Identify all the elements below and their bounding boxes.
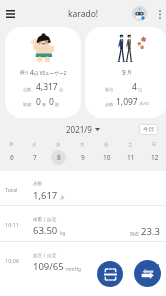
staticText: 12 xyxy=(151,153,159,162)
staticText: 8 xyxy=(57,153,61,162)
staticText: 7 xyxy=(33,153,37,162)
button[interactable]: 10:06 xyxy=(0,242,166,277)
staticText: 0 xyxy=(36,96,41,108)
button[interactable]: 月 xyxy=(0,140,23,171)
staticText: 残り xyxy=(20,70,30,76)
staticText: 歩数 xyxy=(105,102,114,107)
staticText: 0 xyxy=(49,96,54,108)
button[interactable]: Total xyxy=(0,171,166,205)
staticText: 10:06 xyxy=(5,257,33,264)
staticText: karado! xyxy=(68,8,99,20)
staticText: 63.50 xyxy=(33,224,58,237)
staticText: 1,097 xyxy=(116,96,138,108)
staticText: 火 xyxy=(32,142,37,148)
staticText: BMI xyxy=(130,231,139,237)
staticText: mmHg xyxy=(66,266,81,272)
staticText: 血圧 | 自宅 xyxy=(33,252,57,258)
button[interactable]: 木 xyxy=(70,140,94,171)
button[interactable]: Profile xyxy=(132,6,147,21)
staticText: 10:11 xyxy=(5,221,33,228)
staticText: kg xyxy=(60,230,66,236)
staticText: 敗 xyxy=(55,102,60,107)
staticText: 点数 xyxy=(23,87,32,92)
staticText: 9 xyxy=(122,68,126,77)
button[interactable]: More options xyxy=(153,4,166,24)
staticText: 歩/日 xyxy=(139,101,149,107)
staticText: 順位 xyxy=(105,87,114,92)
staticText: 4 xyxy=(30,68,34,77)
button[interactable]: 9 xyxy=(85,27,166,118)
staticText: 4 xyxy=(132,81,137,93)
staticText: 木 xyxy=(80,142,85,148)
staticText: 点 xyxy=(59,87,64,92)
button[interactable]: Menu xyxy=(2,6,18,22)
staticText: 今日 xyxy=(143,126,154,133)
staticText: 日 xyxy=(152,142,157,148)
staticText: 109/65 xyxy=(33,260,64,273)
button[interactable]: 2021/9 xyxy=(63,121,103,138)
button[interactable]: 火 xyxy=(23,140,46,171)
staticText: 歩 xyxy=(60,195,65,201)
button[interactable]: 金 xyxy=(94,140,118,171)
staticText: 体重 | 自宅 xyxy=(33,216,57,222)
button[interactable]: 今日 xyxy=(139,124,158,135)
button[interactable]: Sync xyxy=(134,260,161,287)
staticText: 勝 xyxy=(42,102,47,107)
button[interactable]: 水 xyxy=(46,140,70,171)
button[interactable]: 土 xyxy=(118,140,142,171)
staticText: 戦績 xyxy=(23,102,32,107)
staticText: 9 xyxy=(81,153,85,162)
staticText: 23.3 xyxy=(141,225,160,238)
staticText: 歩数 xyxy=(33,181,43,187)
staticText: 月 xyxy=(9,142,14,148)
staticText: 位 xyxy=(138,87,143,92)
staticText: 11 xyxy=(127,153,135,162)
staticText: 74 xyxy=(149,261,160,274)
staticText: 日 VSユーザー2 xyxy=(34,70,67,76)
staticText: 4,317 xyxy=(36,81,58,93)
button[interactable]: Measure xyxy=(97,261,123,287)
staticText: 土 xyxy=(128,142,133,148)
staticText: 2021/9 xyxy=(66,124,92,135)
button[interactable]: 残り xyxy=(5,27,81,118)
staticText: 6 xyxy=(10,153,14,162)
staticText: 10 xyxy=(103,153,111,162)
staticText: 1,617 xyxy=(33,189,58,202)
staticText: 月 xyxy=(127,70,132,76)
staticText: 金 xyxy=(104,142,109,148)
staticText: 脈拍 xyxy=(137,267,147,273)
button[interactable]: 日 xyxy=(142,140,166,171)
staticText: 水 xyxy=(56,142,61,148)
staticText: Total xyxy=(5,186,33,193)
button[interactable]: 10:11 xyxy=(0,206,166,241)
